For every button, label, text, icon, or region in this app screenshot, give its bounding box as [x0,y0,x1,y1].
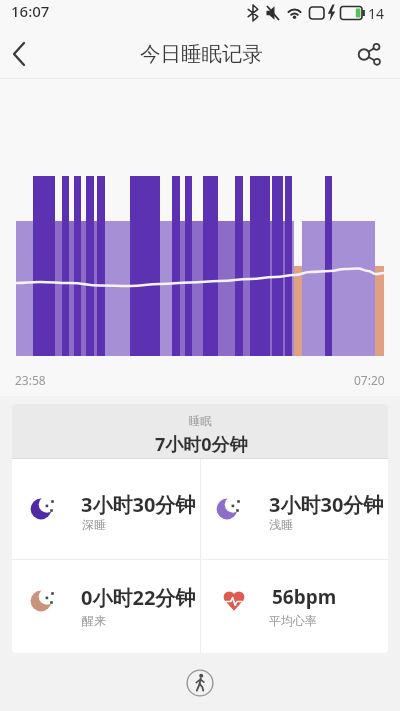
button[interactable] [12,404,388,458]
staticText: 醒来 [82,613,106,628]
button[interactable] [201,460,388,559]
staticText: 今日睡眠记录 [140,41,263,67]
staticText: 16:07 [11,1,50,21]
staticText: 平均心率 [269,613,317,628]
staticText: 14 [368,4,385,23]
button[interactable] [183,666,217,700]
staticText: 7小时0分钟 [155,432,248,457]
button[interactable] [201,560,388,650]
button[interactable] [13,560,200,650]
staticText: 07:20 [354,372,385,388]
button[interactable] [344,36,388,74]
staticText: 23:58 [15,372,46,388]
staticText: 56bpm [272,584,337,610]
staticText: 3小时30分钟 [269,491,384,518]
staticText: 0小时22分钟 [81,584,196,611]
staticText: 3小时30分钟 [81,491,196,518]
button[interactable] [0,32,46,76]
staticText: 睡眠 [189,414,212,428]
button[interactable] [13,460,200,559]
staticText: 深睡 [82,517,106,532]
staticText: 浅睡 [269,517,293,532]
